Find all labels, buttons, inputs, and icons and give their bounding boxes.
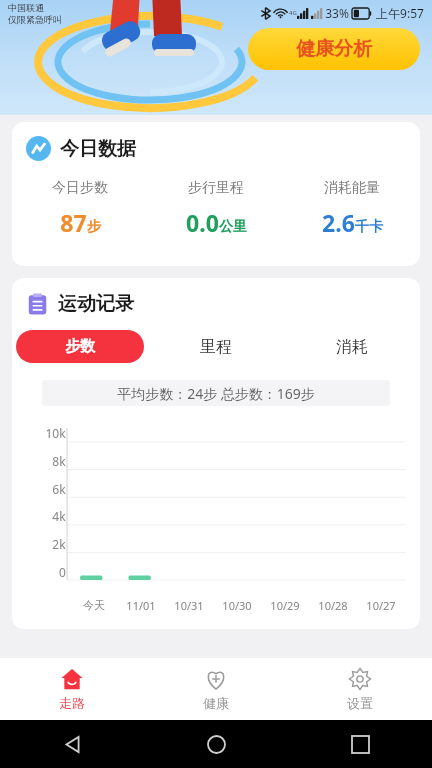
- staticText: 走路: [59, 695, 85, 711]
- staticText: 健康: [203, 695, 229, 711]
- staticText: 4G: [289, 9, 297, 17]
- button[interactable]: 健康分析: [248, 28, 420, 70]
- staticText: 10/29: [270, 598, 300, 613]
- button[interactable]: 健康: [144, 658, 288, 720]
- staticText: 2.6: [322, 207, 355, 238]
- button[interactable]: Home: [144, 720, 288, 768]
- button[interactable]: Recents: [288, 720, 432, 768]
- staticText: 6k: [52, 481, 66, 497]
- staticText: 2k: [52, 536, 66, 552]
- staticText: 里程: [200, 337, 232, 357]
- staticText: 87: [60, 207, 87, 238]
- staticText: 11/01: [126, 598, 156, 613]
- staticText: 今日步数: [52, 179, 108, 197]
- staticText: 消耗: [336, 337, 368, 357]
- staticText: 仅限紧急呼叫: [8, 14, 62, 25]
- staticText: 公里: [219, 218, 247, 236]
- staticText: 千卡: [355, 218, 383, 236]
- staticText: 中国联通: [8, 2, 44, 13]
- staticText: 8k: [52, 453, 66, 469]
- staticText: 设置: [347, 695, 373, 711]
- staticText: 运动记录: [58, 292, 134, 316]
- staticText: 步数: [65, 337, 95, 356]
- staticText: 今天: [83, 598, 105, 612]
- staticText: 健康分析: [296, 37, 372, 61]
- staticText: 10/30: [222, 598, 252, 613]
- staticText: 10/27: [366, 598, 396, 613]
- staticText: 33%: [325, 5, 349, 21]
- staticText: 消耗能量: [324, 179, 380, 197]
- staticText: 10k: [45, 425, 66, 441]
- staticText: 0.0: [186, 207, 219, 238]
- staticText: 步行里程: [188, 179, 244, 197]
- button[interactable]: 步数: [16, 330, 144, 363]
- button[interactable]: 设置: [288, 658, 432, 720]
- button[interactable]: 走路: [0, 658, 144, 720]
- staticText: 平均步数：24步 总步数：169步: [117, 384, 315, 403]
- staticText: 10/28: [318, 598, 348, 613]
- staticText: 10/31: [174, 598, 204, 613]
- staticText: 上午9:57: [376, 5, 424, 21]
- button[interactable]: 消耗: [284, 330, 420, 363]
- staticText: 步: [87, 218, 101, 236]
- staticText: 4k: [52, 508, 66, 524]
- button[interactable]: 里程: [148, 330, 284, 363]
- button[interactable]: Back: [0, 720, 144, 768]
- staticText: 今日数据: [60, 137, 136, 161]
- staticText: 0: [59, 564, 66, 580]
